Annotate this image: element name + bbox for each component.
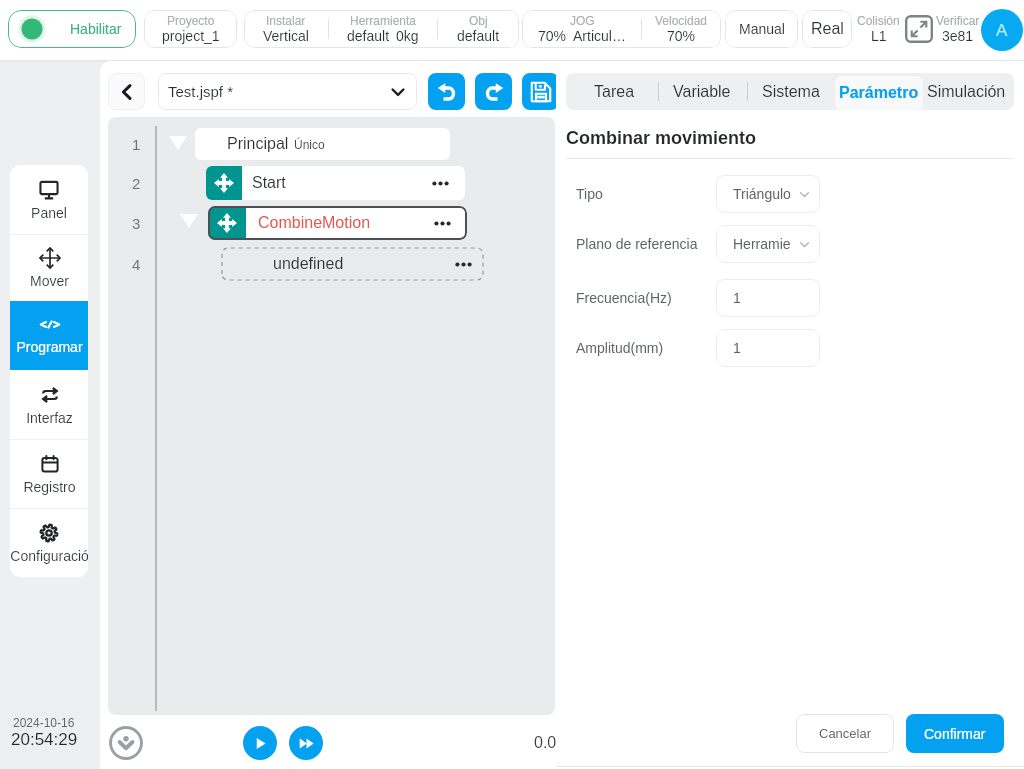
staticText: 3	[132, 215, 141, 232]
button[interactable]: Rehacer	[475, 73, 512, 110]
staticText: Variable	[673, 83, 731, 101]
staticText: Verificar	[936, 14, 980, 27]
staticText: A	[996, 21, 1008, 40]
staticText: Sistema	[762, 83, 820, 101]
button[interactable]: Triángulo	[716, 175, 820, 213]
staticText: Mover	[30, 273, 69, 289]
button[interactable]: Test.jspf *	[158, 73, 417, 110]
button[interactable]: 1	[716, 329, 820, 367]
staticText: 3e81	[942, 28, 974, 44]
staticText: project_1	[162, 28, 220, 44]
button[interactable]: Registro	[10, 439, 88, 508]
staticText: Instalar	[266, 14, 306, 27]
staticText: 1	[132, 136, 141, 153]
staticText: Habilitar	[70, 21, 122, 37]
button[interactable]: CombineMotion	[208, 206, 467, 240]
button[interactable]: Expandir	[905, 15, 933, 43]
staticText: Manual	[739, 21, 785, 37]
button[interactable]: A	[981, 9, 1023, 51]
staticText: 1	[733, 290, 811, 306]
button[interactable]: Herramie	[716, 225, 820, 263]
button[interactable]: Instalar	[244, 10, 519, 48]
staticText: Único	[294, 138, 325, 151]
button[interactable]: Tarea	[578, 73, 650, 110]
button[interactable]: Reproducir	[243, 726, 277, 760]
staticText: 2024-10-16	[13, 716, 75, 729]
staticText: Vertical	[263, 28, 309, 44]
staticText: Cancelar	[819, 726, 872, 741]
staticText: Tipo	[576, 186, 603, 202]
button[interactable]: Principal	[195, 128, 450, 160]
staticText: Velocidad	[655, 14, 708, 27]
staticText: 0kg	[396, 28, 419, 44]
staticText: Combinar movimiento	[566, 128, 757, 148]
staticText: Plano de referencia	[576, 236, 698, 252]
staticText: 2	[132, 175, 141, 192]
staticText: undefined	[273, 255, 344, 273]
button[interactable]: Colapsar	[109, 726, 143, 760]
button[interactable]: Mover	[10, 233, 88, 301]
staticText: Herramie	[733, 236, 798, 252]
button[interactable]: Start	[206, 166, 465, 200]
button[interactable]: Guardar	[522, 73, 559, 110]
button[interactable]: Colisión	[854, 10, 902, 48]
staticText: Start	[252, 174, 431, 192]
button[interactable]: Proyecto	[144, 10, 237, 48]
button[interactable]: Cancelar	[796, 714, 894, 753]
button[interactable]: Parámetro	[835, 76, 923, 110]
staticText: Parámetro	[839, 84, 919, 102]
staticText: Colisión	[857, 14, 900, 27]
staticText: Frecuencia(Hz)	[576, 290, 672, 306]
staticText: Simulación	[927, 83, 1006, 101]
staticText: Programar	[16, 339, 83, 355]
button[interactable]: Variable	[663, 73, 741, 110]
staticText: Tarea	[594, 83, 635, 101]
button[interactable]: Deshacer	[428, 73, 465, 110]
staticText: CombineMotion	[258, 214, 433, 232]
staticText: default	[347, 28, 390, 44]
button[interactable]: Real	[802, 10, 852, 48]
staticText: L1	[871, 28, 887, 44]
staticText: JOG	[570, 14, 595, 27]
button[interactable]: Interfaz	[10, 370, 88, 439]
staticText: Triángulo	[733, 186, 798, 202]
staticText: 70%	[538, 28, 567, 44]
staticText: Configuración	[10, 548, 88, 564]
button[interactable]: Simulación	[924, 73, 1008, 110]
staticText: Confirmar	[924, 726, 986, 742]
staticText: Herramienta	[350, 14, 417, 27]
staticText: Registro	[23, 479, 76, 495]
staticText: Principal	[227, 135, 289, 153]
staticText: Real	[811, 20, 844, 38]
staticText: Obj	[469, 14, 488, 27]
staticText: 0.0	[534, 734, 557, 752]
button[interactable]: Programar	[10, 301, 88, 370]
button[interactable]: undefined	[222, 248, 483, 280]
staticText: Articul…	[573, 28, 626, 44]
staticText: Amplitud(mm)	[576, 340, 664, 356]
button[interactable]: Panel	[10, 165, 88, 233]
staticText: 1	[733, 340, 811, 356]
button[interactable]: Atrás	[108, 73, 145, 110]
button[interactable]: Avance rápido	[289, 726, 323, 760]
staticText: Proyecto	[167, 14, 215, 27]
button[interactable]: Sistema	[752, 73, 830, 110]
staticText: Interfaz	[26, 410, 73, 426]
staticText: Panel	[31, 205, 67, 221]
staticText: 20:54:29	[11, 730, 78, 749]
button[interactable]: JOG	[522, 10, 721, 48]
button[interactable]: Confirmar	[906, 714, 1004, 753]
button[interactable]: Habilitar	[8, 10, 136, 48]
button[interactable]: 1	[716, 279, 820, 317]
button[interactable]: Manual	[725, 10, 798, 48]
button[interactable]: Contraer	[180, 213, 198, 228]
button[interactable]: Contraer	[169, 135, 187, 150]
staticText: 70%	[667, 28, 696, 44]
staticText: Test.jspf *	[168, 83, 389, 100]
staticText: 4	[132, 256, 141, 273]
button[interactable]: Configuración	[10, 508, 88, 577]
button[interactable]: Verificar	[934, 10, 982, 48]
staticText: default	[457, 28, 500, 44]
